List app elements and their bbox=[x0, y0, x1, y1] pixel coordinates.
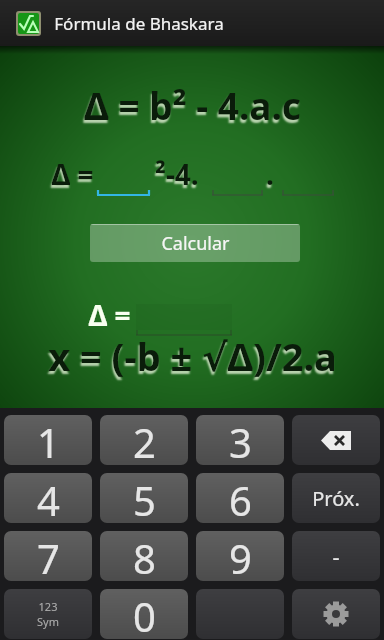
staticText: Calcular bbox=[161, 231, 230, 256]
staticText: 5 bbox=[133, 473, 156, 523]
staticText: Próx. bbox=[312, 485, 360, 512]
button[interactable]: 5 bbox=[100, 473, 188, 523]
staticText: - bbox=[332, 541, 340, 571]
staticText: 2 bbox=[133, 415, 156, 465]
staticText: Δ = bbox=[88, 296, 131, 334]
staticText: ²-4. bbox=[155, 155, 199, 193]
staticText: 7 bbox=[37, 531, 60, 581]
button[interactable]: - bbox=[292, 531, 380, 581]
staticText: 0 bbox=[133, 589, 156, 639]
button[interactable]: 2 bbox=[100, 415, 188, 465]
button[interactable]: 9 bbox=[196, 531, 284, 581]
button[interactable]: 0 bbox=[100, 589, 188, 639]
button[interactable]: 7 bbox=[4, 531, 92, 581]
button[interactable] bbox=[136, 330, 232, 336]
staticText: Fórmula de Bhaskara bbox=[54, 12, 224, 35]
button[interactable]: 8 bbox=[100, 531, 188, 581]
button[interactable] bbox=[196, 589, 284, 639]
button[interactable]: 6 bbox=[196, 473, 284, 523]
button[interactable]: Próx. bbox=[292, 473, 380, 523]
staticText: 9 bbox=[229, 531, 252, 581]
button[interactable] bbox=[292, 415, 380, 465]
staticText: 6 bbox=[229, 473, 252, 523]
staticText: 123 Sym bbox=[37, 599, 59, 629]
staticText: 1 bbox=[37, 415, 60, 465]
button[interactable] bbox=[282, 190, 334, 196]
staticText: Δ = b² - 4.a.c bbox=[84, 80, 301, 130]
staticText: . bbox=[266, 155, 274, 193]
staticText: Δ = bbox=[51, 155, 94, 193]
staticText: 8 bbox=[133, 531, 156, 581]
button[interactable] bbox=[212, 190, 263, 196]
button[interactable]: Calcular bbox=[90, 224, 300, 262]
staticText: x = (-b ± √Δ)/2.a bbox=[48, 330, 337, 382]
button[interactable]: 4 bbox=[4, 473, 92, 523]
button[interactable] bbox=[292, 589, 380, 639]
button[interactable]: 123 Sym bbox=[4, 589, 92, 639]
staticText: 4 bbox=[37, 473, 60, 523]
button[interactable]: 1 bbox=[4, 415, 92, 465]
button[interactable]: 3 bbox=[196, 415, 284, 465]
button[interactable] bbox=[97, 190, 150, 196]
staticText: 3 bbox=[229, 415, 252, 465]
